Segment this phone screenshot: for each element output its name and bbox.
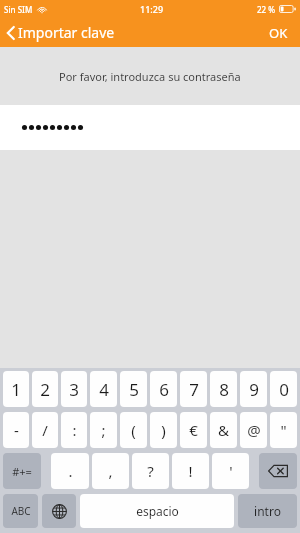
staticText: 5 <box>129 378 139 401</box>
button[interactable]: € <box>180 412 207 448</box>
staticText: & <box>218 420 229 440</box>
button[interactable]: 0 <box>270 371 297 407</box>
button[interactable]: Backspace <box>259 453 297 489</box>
staticText: € <box>189 420 198 440</box>
button[interactable]: 7 <box>180 371 207 407</box>
staticText: ABC <box>11 504 31 518</box>
button[interactable]: ; <box>90 412 117 448</box>
staticText: " <box>280 420 287 440</box>
staticText: 6 <box>159 378 169 401</box>
button[interactable]: & <box>210 412 237 448</box>
button[interactable]: ! <box>172 453 209 489</box>
button[interactable]: ? <box>132 453 169 489</box>
staticText: 11:29 <box>140 3 164 15</box>
button[interactable]: Change keyboard language <box>42 494 76 528</box>
staticText: 22 % <box>257 4 276 15</box>
staticText: . <box>68 461 73 481</box>
staticText: 1 <box>11 378 21 401</box>
button[interactable]: 9 <box>240 371 267 407</box>
staticText: ! <box>188 461 193 481</box>
button[interactable]: @ <box>240 412 267 448</box>
button[interactable]: intro <box>238 494 297 528</box>
button[interactable]: Importar clave <box>6 23 121 42</box>
button[interactable]: espacio <box>80 494 234 528</box>
staticText: - <box>14 420 19 440</box>
staticText: #+= <box>12 464 32 479</box>
button[interactable]: , <box>92 453 129 489</box>
button[interactable]: ( <box>120 412 147 448</box>
button[interactable]: 6 <box>150 371 177 407</box>
button[interactable]: ' <box>212 453 249 489</box>
staticText: Sin SIM <box>4 4 33 15</box>
button[interactable]: " <box>270 412 297 448</box>
staticText: ' <box>229 461 233 481</box>
staticText: 0 <box>279 378 289 401</box>
staticText: espacio <box>136 503 179 519</box>
staticText: ( <box>131 420 136 440</box>
button[interactable]: 4 <box>90 371 117 407</box>
button[interactable]: 2 <box>32 371 58 407</box>
button[interactable]: 3 <box>61 371 87 407</box>
staticText: 7 <box>189 378 199 401</box>
button[interactable]: / <box>32 412 58 448</box>
staticText: OK <box>269 24 288 42</box>
staticText: 9 <box>249 378 259 401</box>
button[interactable]: 5 <box>120 371 147 407</box>
staticText: @ <box>247 420 261 440</box>
staticText: 3 <box>69 378 79 401</box>
button[interactable]: OK <box>265 20 292 46</box>
staticText: : <box>72 420 77 440</box>
button[interactable]: ABC <box>3 494 38 528</box>
staticText: ; <box>101 420 106 440</box>
button[interactable]: : <box>61 412 87 448</box>
button[interactable]: ) <box>150 412 177 448</box>
staticText: 2 <box>40 378 50 401</box>
staticText: Por favor, introduzca su contraseña <box>59 69 241 84</box>
staticText: , <box>108 461 113 481</box>
staticText: ) <box>161 420 166 440</box>
staticText: 8 <box>219 378 229 401</box>
button[interactable]: - <box>3 412 29 448</box>
staticText: 4 <box>99 378 109 401</box>
staticText: Importar clave <box>18 23 115 42</box>
button[interactable]: 8 <box>210 371 237 407</box>
button[interactable] <box>0 105 300 150</box>
staticText: / <box>42 420 48 440</box>
button[interactable]: 1 <box>3 371 29 407</box>
button[interactable]: #+= <box>3 453 41 489</box>
button[interactable]: . <box>51 453 89 489</box>
staticText: ? <box>147 461 154 481</box>
staticText: intro <box>254 503 281 519</box>
